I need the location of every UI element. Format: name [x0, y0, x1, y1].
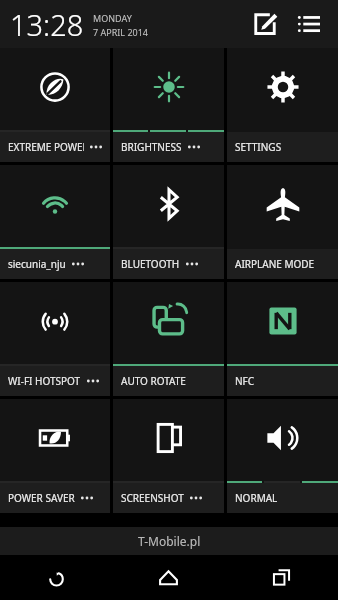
staticText: BRIGHTNESS [121, 140, 182, 154]
button[interactable]: List [290, 5, 328, 43]
button[interactable]: Home [112, 555, 225, 600]
staticText: T-Mobile.pl [138, 533, 201, 549]
button[interactable]: Back [0, 555, 112, 600]
button[interactable]: BLUETOOTH [113, 165, 224, 279]
staticText: 7 APRIL 2014 [93, 26, 148, 38]
button[interactable]: NFC [227, 282, 338, 396]
staticText: MONDAY [93, 12, 132, 24]
button[interactable]: BRIGHTNESS [113, 48, 224, 162]
staticText: AIRPLANE MODE [235, 257, 315, 271]
button[interactable]: POWER SAVER [0, 399, 110, 513]
button[interactable]: AUTO ROTATE [113, 282, 224, 396]
staticText: SCREENSHOT [121, 491, 184, 505]
staticText: NORMAL [235, 491, 278, 505]
button[interactable]: EXTREME POWER SAVER [0, 48, 110, 162]
staticText: SETTINGS [235, 140, 282, 154]
button[interactable]: WI-FI HOTSPOT [0, 282, 110, 396]
button[interactable]: NORMAL [227, 399, 338, 513]
staticText: AUTO ROTATE [121, 374, 186, 388]
staticText: siecunia_nju [8, 257, 66, 271]
button[interactable]: SCREENSHOT [113, 399, 224, 513]
staticText: 13:28 [10, 5, 84, 44]
button[interactable]: Edit [246, 5, 284, 43]
button[interactable]: siecunia_nju [0, 165, 110, 279]
staticText: BLUETOOTH [121, 257, 180, 271]
button[interactable]: AIRPLANE MODE [227, 165, 338, 279]
staticText: NFC [235, 374, 255, 388]
button[interactable]: Recent apps [225, 555, 338, 600]
staticText: EXTREME POWER SAVER [8, 140, 84, 154]
staticText: POWER SAVER [8, 491, 75, 505]
button[interactable]: SETTINGS [227, 48, 338, 162]
staticText: WI-FI HOTSPOT [8, 374, 81, 388]
